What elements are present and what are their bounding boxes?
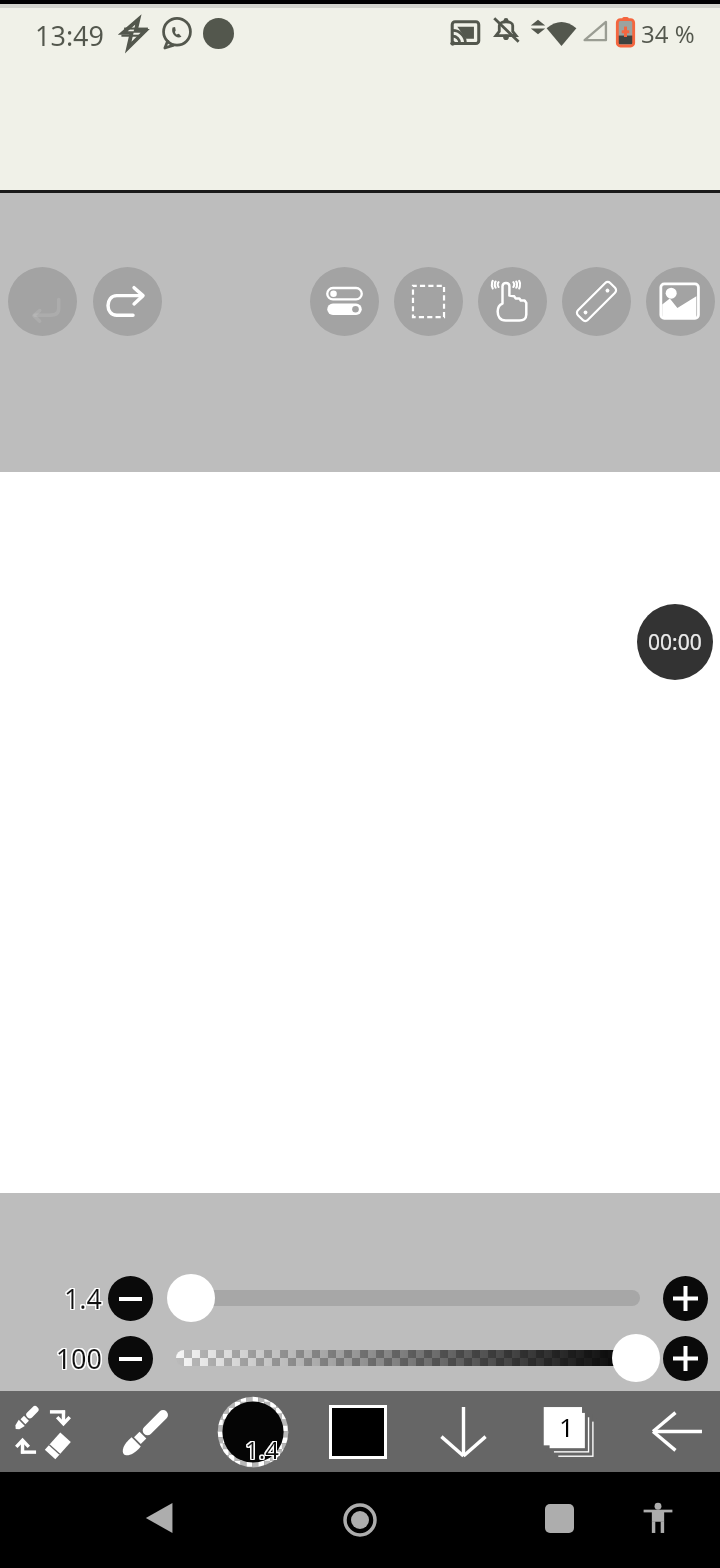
- staticText: 100: [54, 1340, 101, 1377]
- staticText: 1.4: [244, 1434, 278, 1467]
- staticText: 1.4: [244, 1433, 278, 1466]
- staticText: 1.4: [245, 1433, 279, 1466]
- staticText: 100: [56, 1339, 103, 1376]
- staticText: 1.4: [63, 1280, 102, 1317]
- staticText: 00:00: [648, 628, 702, 657]
- button[interactable]: Recent apps: [534, 1493, 584, 1543]
- button[interactable]: slider thumb: [612, 1334, 660, 1382]
- staticText: 100: [55, 1341, 102, 1378]
- staticText: 1.4: [63, 1281, 102, 1318]
- staticText: 1.4: [64, 1279, 103, 1316]
- staticText: 1.4: [245, 1434, 279, 1467]
- staticText: 100: [56, 1340, 103, 1377]
- staticText: 100: [56, 1341, 103, 1378]
- staticText: 100: [55, 1339, 102, 1376]
- button[interactable]: Layers: [526, 1391, 616, 1472]
- staticText: 1.4: [246, 1433, 280, 1466]
- staticText: 1.4: [62, 1281, 101, 1318]
- button[interactable]: tool: [478, 267, 547, 336]
- staticText: 1.4: [64, 1281, 103, 1318]
- button[interactable]: tool: [8, 267, 77, 336]
- button[interactable]: Back: [632, 1391, 720, 1472]
- staticText: 1.4: [246, 1432, 280, 1465]
- button[interactable]: Swap brush and eraser: [0, 1391, 86, 1472]
- staticText: 100: [54, 1339, 101, 1376]
- staticText: 100: [55, 1340, 102, 1377]
- staticText: 1.4: [245, 1432, 279, 1465]
- button[interactable]: increase: [663, 1336, 708, 1381]
- button[interactable]: Colour: [313, 1391, 403, 1472]
- staticText: 13:49: [35, 17, 105, 54]
- staticText: 1.4: [246, 1434, 280, 1467]
- button[interactable]: increase: [663, 1276, 708, 1321]
- button[interactable]: slider thumb: [167, 1274, 215, 1322]
- button[interactable]: Home: [335, 1495, 385, 1545]
- button[interactable]: Brush: [100, 1391, 192, 1472]
- button[interactable]: Timer: [637, 604, 713, 680]
- staticText: 34 %: [641, 17, 695, 50]
- staticText: 100: [54, 1341, 101, 1378]
- button[interactable]: tool: [310, 267, 379, 336]
- button[interactable]: tool: [562, 267, 631, 336]
- button[interactable]: Brush size: [210, 1391, 296, 1472]
- staticText: 1.4: [63, 1279, 102, 1316]
- button[interactable]: tool: [646, 267, 715, 336]
- button[interactable]: Accessibility: [633, 1493, 683, 1543]
- staticText: 1.4: [62, 1279, 101, 1316]
- button[interactable]: Back: [134, 1493, 184, 1543]
- button[interactable]: tool: [93, 267, 162, 336]
- button[interactable]: tool: [394, 267, 463, 336]
- button[interactable]: decrease: [108, 1336, 153, 1381]
- button[interactable]: Download: [418, 1391, 508, 1472]
- staticText: 1: [559, 1409, 574, 1444]
- staticText: 1.4: [244, 1432, 278, 1465]
- staticText: 1.4: [62, 1280, 101, 1317]
- button[interactable]: decrease: [108, 1276, 153, 1321]
- staticText: 1.4: [64, 1280, 103, 1317]
